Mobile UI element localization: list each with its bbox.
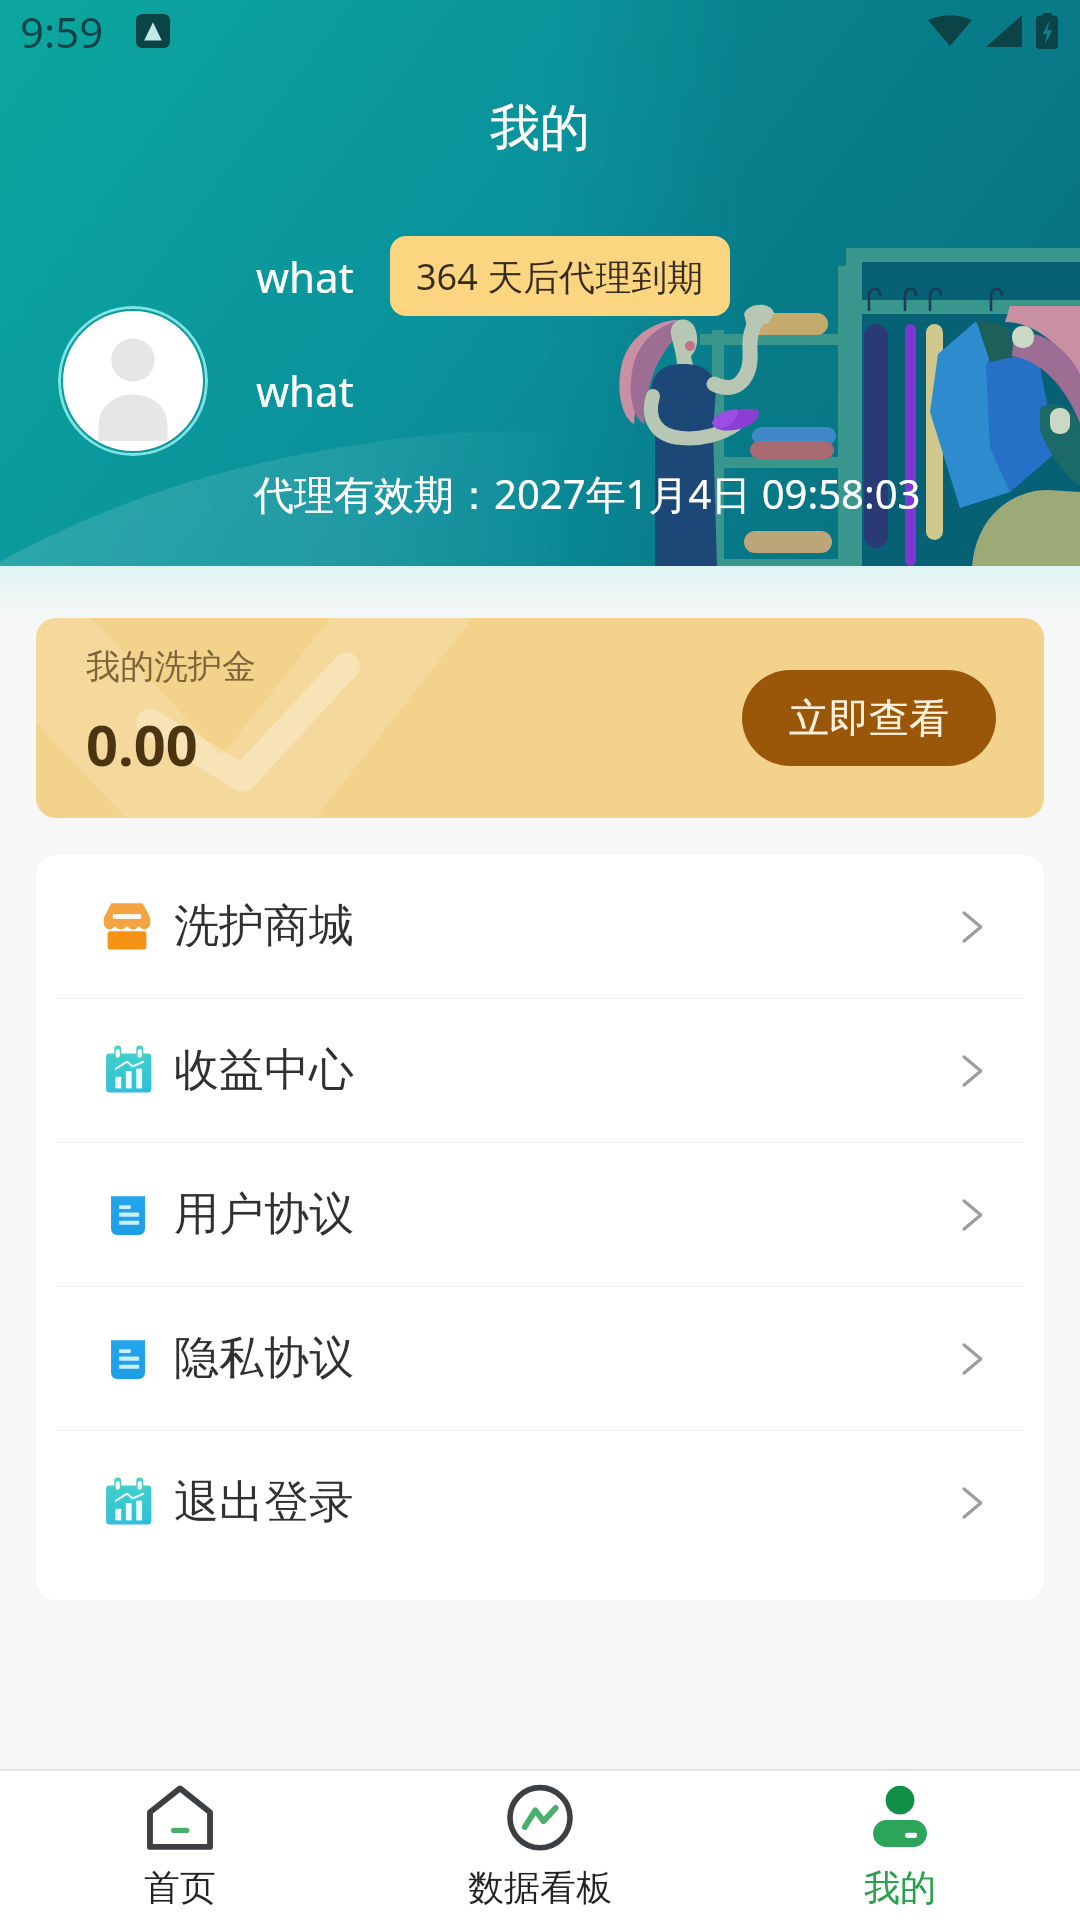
button[interactable]: 隐私协议 <box>36 1287 1044 1430</box>
button[interactable]: 立即查看 <box>742 670 996 766</box>
staticText: what <box>256 248 354 305</box>
staticText: 代理有效期：2027年1月4日 09:58:03 <box>254 466 921 521</box>
button[interactable]: 数据看板 <box>360 1771 720 1920</box>
staticText: 隐私协议 <box>174 1330 354 1387</box>
button[interactable]: 首页 <box>0 1771 360 1920</box>
button[interactable]: Profile avatar <box>58 306 208 456</box>
staticText: 退出登录 <box>174 1474 354 1531</box>
button[interactable]: 我的洗护金 <box>36 618 1044 818</box>
button[interactable]: 收益中心 <box>36 999 1044 1142</box>
staticText: 立即查看 <box>789 693 949 743</box>
staticText: 我的 <box>864 1865 936 1910</box>
staticText: 我的洗护金 <box>86 645 256 688</box>
button[interactable]: 我的 <box>720 1771 1080 1920</box>
staticText: 洗护商城 <box>174 898 354 955</box>
button[interactable]: 退出登录 <box>36 1431 1044 1574</box>
staticText: 收益中心 <box>174 1042 354 1099</box>
staticText: 9:59 <box>20 3 104 60</box>
staticText: 用户协议 <box>174 1186 354 1243</box>
staticText: 我的 <box>490 97 590 160</box>
staticText: 0.00 <box>86 706 198 782</box>
staticText: 首页 <box>144 1865 216 1910</box>
staticText: 数据看板 <box>468 1865 612 1910</box>
button[interactable]: 洗护商城 <box>36 855 1044 998</box>
staticText: what <box>256 362 354 419</box>
button[interactable]: 用户协议 <box>36 1143 1044 1286</box>
staticText: 364 天后代理到期 <box>416 252 704 301</box>
